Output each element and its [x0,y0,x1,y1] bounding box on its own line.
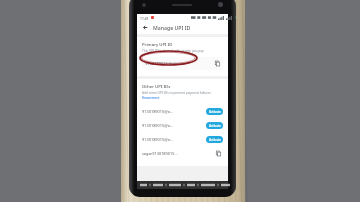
button[interactable]: 9130189015@okaxis [142,57,223,70]
button[interactable]: Activate [206,108,223,115]
staticText: 9130189015@okhdfcbank [142,109,174,114]
staticText: Know more [142,96,160,100]
staticText: Activate [209,138,221,142]
staticText: Manage UPI ID [153,24,191,31]
button[interactable]: sagar9130189015@okaxis [142,146,223,160]
button[interactable]: Know more [142,96,160,100]
button[interactable]: 9130189015@okicici [142,118,223,132]
button[interactable]: Copy UPI ID [214,149,223,158]
staticText: 9130189015@okaxis [145,61,184,66]
staticText: 11:41 [140,16,149,20]
staticText: Activate [209,110,221,114]
button[interactable]: 9130189015@oksbi [142,132,223,146]
staticText: Add more UPI IDs to prevent payment fail… [142,91,211,95]
button[interactable]: Activate [206,136,223,143]
staticText: 9130189015@okicici [142,123,174,128]
button[interactable]: 9130189015@okhdfcbank [142,104,223,118]
staticText: Other UPI IDs [142,83,171,89]
staticText: 9130189015@oksbi [142,137,174,142]
staticText: Activate [209,124,221,128]
staticText: This UPI ID is shared with people you pa… [142,49,204,53]
staticText: Primary UPI ID [142,41,173,47]
staticText: sagar9130189015@okaxis [142,151,178,156]
button[interactable]: Activate [206,122,223,129]
button[interactable]: Back [141,23,150,32]
